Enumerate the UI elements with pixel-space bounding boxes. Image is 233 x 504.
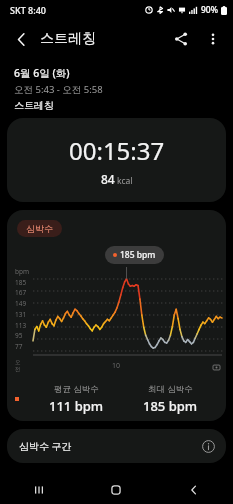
- staticText: 오전 5:43 - 오전 5:58: [14, 83, 103, 96]
- staticText: 77: [15, 342, 23, 351]
- staticText: 최대 심박수: [148, 383, 193, 395]
- button[interactable]: Info: [198, 436, 218, 456]
- staticText: 185: [15, 278, 27, 287]
- staticText: 오: [15, 359, 21, 366]
- staticText: 평균 심박수: [54, 383, 99, 395]
- staticText: bpm: [15, 267, 30, 276]
- staticText: 113: [15, 321, 27, 330]
- staticText: 131: [15, 310, 27, 319]
- staticText: 스트레칭: [14, 99, 54, 112]
- staticText: 10: [112, 361, 121, 371]
- button[interactable]: Recents: [0, 475, 77, 504]
- button[interactable]: Share: [165, 23, 197, 55]
- staticText: 149: [15, 299, 27, 308]
- staticText: 185 bpm: [143, 397, 198, 415]
- staticText: 전: [15, 366, 21, 373]
- button[interactable]: 심박수: [7, 210, 226, 421]
- button[interactable]: Back: [4, 22, 38, 56]
- staticText: 95: [15, 331, 23, 340]
- button[interactable]: Back: [155, 475, 233, 504]
- staticText: 스트레칭: [40, 30, 96, 48]
- button[interactable]: More options: [197, 23, 229, 55]
- staticText: kcal: [117, 175, 133, 187]
- staticText: 90%: [201, 4, 218, 16]
- button[interactable]: 심박수 구간: [7, 429, 226, 463]
- staticText: 84: [101, 171, 115, 187]
- staticText: 167: [15, 288, 27, 297]
- button[interactable]: 00:15:37: [7, 118, 226, 202]
- staticText: 심박수: [26, 223, 53, 234]
- staticText: 00:15:37: [69, 134, 165, 167]
- staticText: 185 bpm: [120, 249, 156, 261]
- button[interactable]: Home: [77, 475, 155, 504]
- staticText: SKT 8:40: [10, 4, 46, 16]
- staticText: 심박수 구간: [19, 439, 72, 453]
- staticText: 111 bpm: [49, 397, 104, 415]
- staticText: 6월 6일 (화): [14, 66, 70, 80]
